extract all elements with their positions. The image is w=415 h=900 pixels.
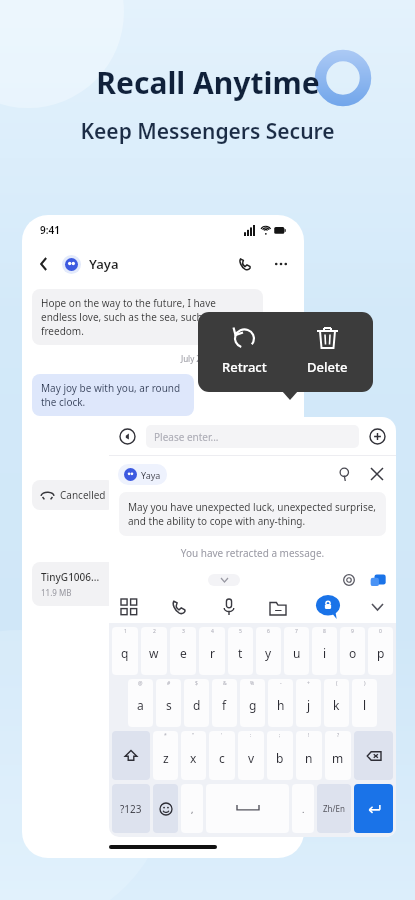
button[interactable]: Retract bbox=[208, 312, 280, 392]
button[interactable]: : bbox=[238, 731, 264, 780]
button[interactable]: Translate bbox=[335, 464, 355, 484]
button[interactable]: Voice input bbox=[118, 427, 137, 446]
button[interactable]: 5 bbox=[228, 627, 253, 675]
button[interactable]: Microphone bbox=[215, 593, 243, 621]
button[interactable]: 8 bbox=[312, 627, 337, 675]
button[interactable]: Emoji bbox=[153, 784, 178, 833]
button[interactable]: 1 bbox=[112, 627, 138, 675]
button[interactable]: & bbox=[212, 679, 237, 727]
staticText: You have retracted a message. bbox=[32, 425, 274, 436]
staticText: Please enter... bbox=[154, 430, 219, 444]
staticText: " bbox=[192, 732, 195, 739]
staticText: 9:41 bbox=[40, 223, 60, 237]
button[interactable]: $ bbox=[184, 679, 209, 727]
button[interactable]: Backspace bbox=[354, 731, 393, 780]
staticText: ; bbox=[279, 732, 281, 739]
button[interactable]: ! bbox=[296, 731, 322, 780]
button[interactable]: Shift bbox=[112, 731, 150, 780]
staticText: Yaya bbox=[89, 255, 119, 273]
staticText: y bbox=[265, 645, 272, 661]
button[interactable]: Collapse bbox=[364, 594, 390, 620]
button[interactable]: Files bbox=[264, 593, 292, 621]
button[interactable]: ; bbox=[267, 731, 293, 780]
staticText: v bbox=[248, 750, 255, 766]
staticText: t bbox=[238, 645, 243, 661]
staticText: ? bbox=[337, 732, 340, 739]
button[interactable]: Expand bbox=[208, 574, 240, 586]
staticText: Delete bbox=[307, 358, 348, 376]
staticText: h bbox=[277, 697, 285, 713]
staticText: 0 bbox=[379, 628, 382, 635]
staticText: 11.9 MB bbox=[41, 587, 72, 598]
staticText: Yaya bbox=[141, 469, 161, 481]
staticText: $ bbox=[195, 680, 198, 687]
button[interactable]: % bbox=[240, 679, 265, 727]
button[interactable]: ?123 bbox=[112, 784, 150, 833]
staticText: g bbox=[249, 697, 257, 713]
button[interactable]: Add bbox=[368, 427, 387, 446]
button[interactable]: Back bbox=[34, 254, 54, 274]
staticText: u bbox=[293, 645, 301, 661]
staticText: s bbox=[166, 697, 172, 713]
button[interactable]: Please enter... bbox=[146, 425, 359, 448]
button[interactable]: Zh/En bbox=[317, 784, 351, 833]
staticText: ) bbox=[364, 680, 366, 687]
button[interactable]: Call bbox=[234, 253, 256, 275]
staticText: You have retracted a message. bbox=[109, 546, 396, 560]
button[interactable]: Close bbox=[367, 464, 387, 484]
staticText: 6 bbox=[267, 628, 270, 635]
button[interactable]: 4 bbox=[199, 627, 225, 675]
button[interactable]: # bbox=[156, 679, 181, 727]
button[interactable]: @ bbox=[128, 679, 153, 727]
staticText: x bbox=[190, 750, 197, 766]
button[interactable]: , bbox=[181, 784, 203, 833]
button[interactable]: 0 bbox=[368, 627, 393, 675]
button[interactable]: 2 bbox=[141, 627, 167, 675]
staticText: & bbox=[223, 680, 227, 687]
button[interactable]: Apps bbox=[115, 593, 143, 621]
staticText: w bbox=[149, 645, 159, 661]
staticText: - bbox=[280, 680, 282, 687]
staticText: i bbox=[323, 645, 327, 661]
staticText: Cancelled bbox=[60, 488, 106, 502]
staticText: b bbox=[276, 750, 284, 766]
button[interactable]: Chat bbox=[314, 593, 342, 621]
button[interactable]: 3 bbox=[170, 627, 196, 675]
button[interactable]: Yaya bbox=[118, 464, 167, 485]
staticText: p bbox=[377, 645, 385, 661]
button[interactable]: Delete bbox=[291, 312, 363, 392]
staticText: l bbox=[363, 697, 367, 713]
staticText: Recall Anytime bbox=[96, 62, 320, 103]
staticText: f bbox=[222, 697, 227, 713]
button[interactable]: 9 bbox=[340, 627, 365, 675]
staticText: * bbox=[164, 732, 167, 739]
button[interactable]: Send bbox=[368, 570, 388, 590]
button[interactable]: + bbox=[296, 679, 321, 727]
staticText: ! bbox=[308, 732, 310, 739]
button[interactable]: - bbox=[268, 679, 293, 727]
button[interactable]: ) bbox=[352, 679, 377, 727]
staticText: , bbox=[191, 803, 194, 815]
button[interactable]: More options bbox=[270, 253, 292, 275]
staticText: c bbox=[219, 750, 225, 766]
staticText: 4 bbox=[211, 628, 214, 635]
button[interactable]: ? bbox=[325, 731, 351, 780]
staticText: July 27, 2022 at 10:00 bbox=[32, 353, 260, 364]
staticText: z bbox=[163, 750, 169, 766]
staticText: # bbox=[167, 680, 171, 687]
button[interactable]: Call bbox=[165, 593, 193, 621]
button[interactable]: ' bbox=[209, 731, 235, 780]
staticText: . bbox=[302, 803, 305, 815]
button[interactable]: 6 bbox=[256, 627, 281, 675]
button[interactable]: . bbox=[292, 784, 314, 833]
button[interactable]: ( bbox=[324, 679, 349, 727]
staticText: 8 bbox=[323, 628, 326, 635]
staticText: d bbox=[193, 697, 201, 713]
button[interactable]: Space bbox=[206, 784, 289, 833]
button[interactable]: * bbox=[153, 731, 178, 780]
button[interactable]: Scan bbox=[340, 571, 358, 589]
button[interactable]: Enter bbox=[354, 784, 393, 833]
staticText: 5 bbox=[239, 628, 242, 635]
button[interactable]: " bbox=[181, 731, 206, 780]
button[interactable]: 7 bbox=[284, 627, 309, 675]
